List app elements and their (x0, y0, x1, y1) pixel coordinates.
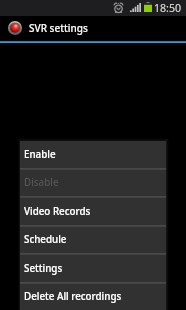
button[interactable]: Disable (20, 169, 166, 196)
button[interactable]: Video Records (20, 198, 166, 225)
button[interactable]: Delete All recordings (20, 283, 166, 310)
staticText: 18:50 (154, 1, 182, 13)
staticText: Enable (24, 148, 56, 161)
staticText: SVR settings (29, 21, 88, 35)
staticText: Disable (24, 176, 59, 189)
staticText: Delete All recordings (24, 290, 122, 303)
button[interactable]: Settings (20, 255, 166, 282)
button[interactable]: Enable (20, 141, 166, 168)
button[interactable]: Schedule (20, 226, 166, 253)
staticText: Settings (24, 262, 63, 275)
staticText: Schedule (24, 233, 67, 246)
staticText: Video Records (24, 205, 91, 218)
other: App icon (8, 21, 22, 35)
